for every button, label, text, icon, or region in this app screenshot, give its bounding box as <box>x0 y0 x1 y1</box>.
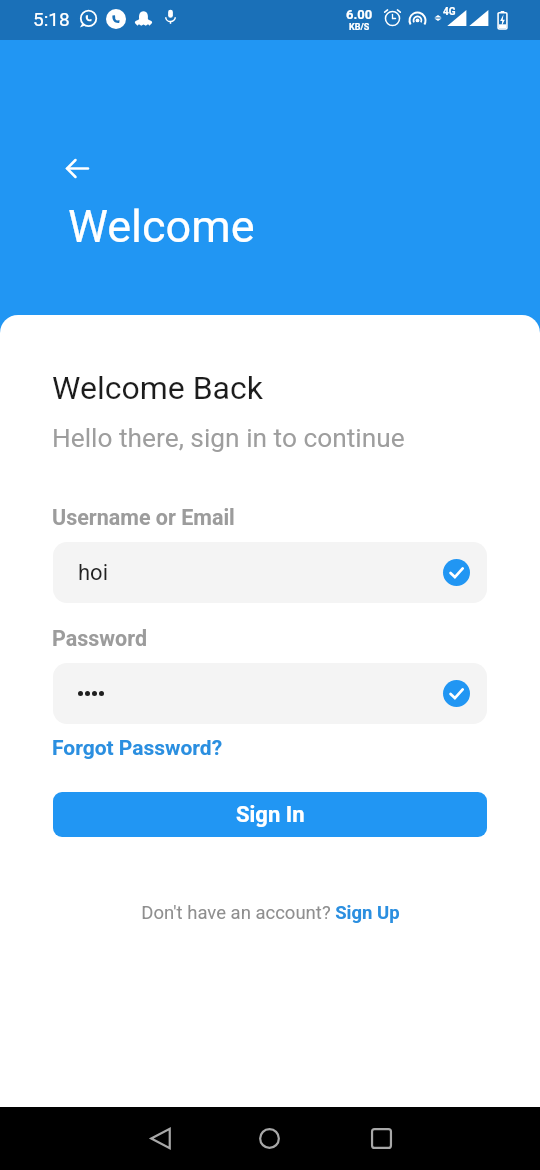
button[interactable]: Sign In <box>53 792 487 837</box>
button[interactable]: Don't have an account? Sign Up <box>135 898 406 928</box>
staticText: KB/S <box>349 22 370 33</box>
staticText: Forgot Password? <box>52 736 223 761</box>
button[interactable]: Back <box>65 156 90 181</box>
staticText: Sign In <box>236 802 305 828</box>
staticText: 4G <box>443 6 456 18</box>
staticText: Username or Email <box>52 505 235 530</box>
staticText: Welcome <box>68 200 255 253</box>
staticText: 5:18 <box>33 8 70 30</box>
button[interactable]: Forgot Password? <box>52 732 223 765</box>
staticText: hoi <box>78 560 109 586</box>
button[interactable] <box>53 663 487 724</box>
staticText: Password <box>52 626 148 651</box>
button[interactable]: Home <box>245 1114 293 1162</box>
staticText: Welcome Back <box>52 369 263 407</box>
button[interactable]: Back <box>136 1114 184 1162</box>
button[interactable]: hoi <box>53 542 487 603</box>
staticText: Hello there, sign in to continue <box>52 423 405 454</box>
staticText: 6.00 <box>346 7 373 22</box>
staticText: Don't have an account? Sign Up <box>141 902 400 924</box>
button[interactable]: Recent apps <box>357 1114 405 1162</box>
